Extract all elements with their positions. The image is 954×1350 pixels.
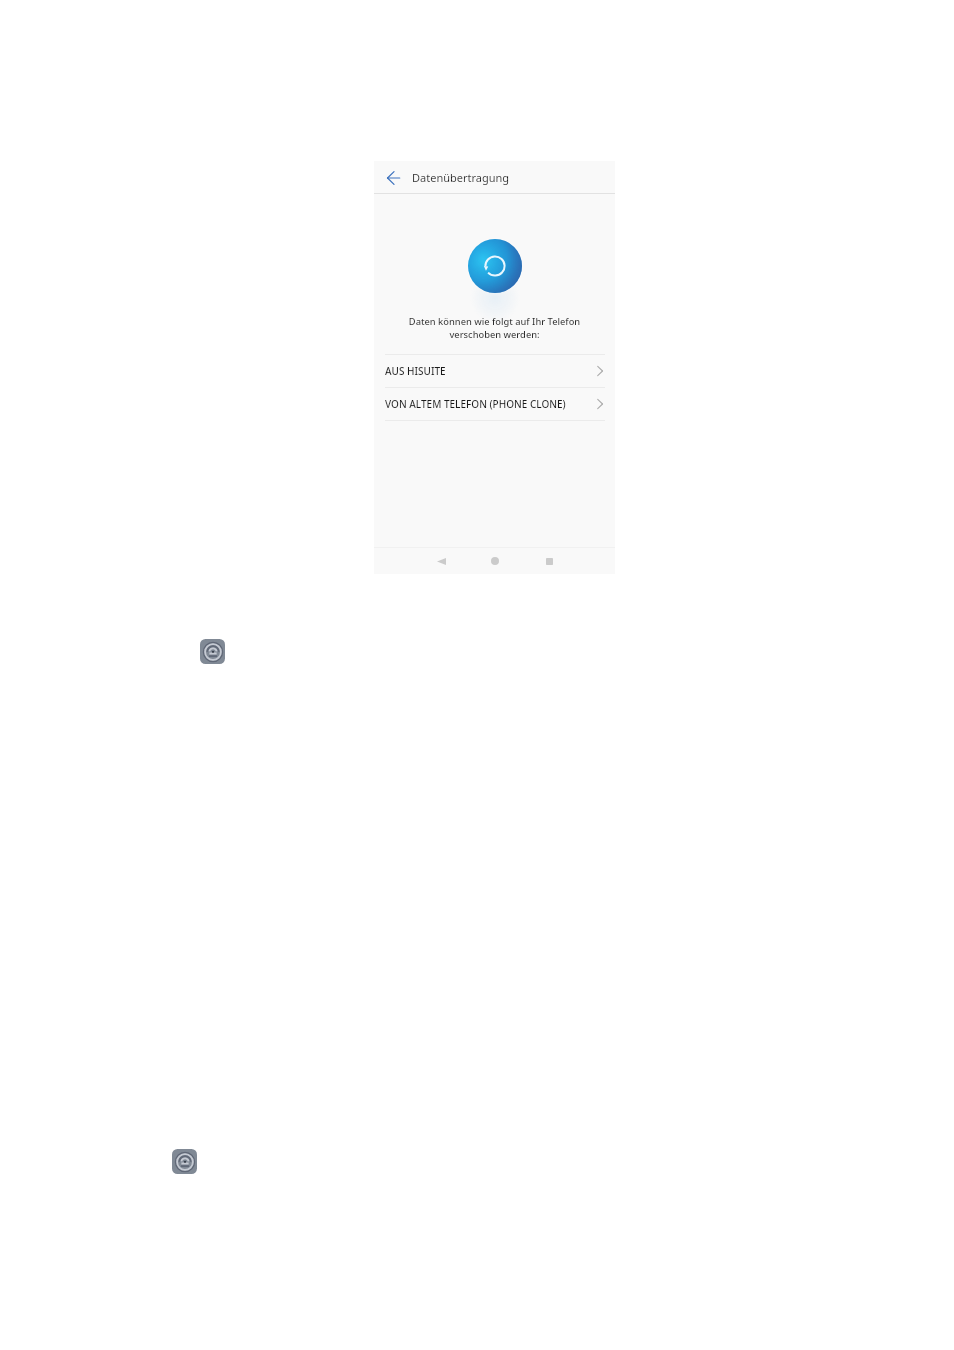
staticText: Datenübertragung: [412, 170, 510, 185]
staticText: Daten können wie folgt auf Ihr Telefon v…: [374, 315, 615, 340]
staticText: AUS HISUITE: [385, 364, 446, 378]
button[interactable]: Back: [430, 548, 452, 574]
button[interactable]: App icon: [200, 639, 225, 664]
button[interactable]: VON ALTEM TELEFON (PHONE CLONE): [374, 388, 615, 420]
staticText: VON ALTEM TELEFON (PHONE CLONE): [385, 397, 566, 411]
button[interactable]: AUS HISUITE: [374, 355, 615, 387]
button[interactable]: Recents: [538, 548, 560, 574]
button[interactable]: Back: [381, 166, 405, 190]
button[interactable]: App icon: [172, 1149, 197, 1174]
button[interactable]: Home: [484, 548, 506, 574]
